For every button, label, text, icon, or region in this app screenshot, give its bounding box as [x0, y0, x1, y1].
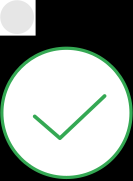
button[interactable]: Profile	[0, 0, 36, 36]
